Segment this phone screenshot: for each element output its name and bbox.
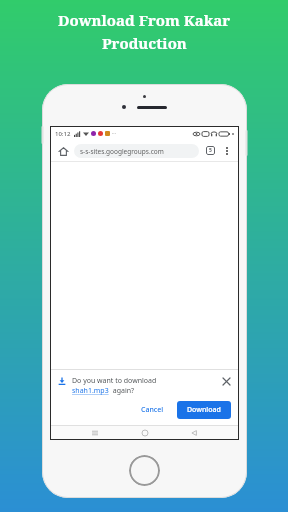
button[interactable]: Cancel (135, 402, 170, 418)
button[interactable]: Download (177, 401, 231, 419)
staticText: Production (102, 33, 187, 53)
staticText: 5 (209, 147, 212, 154)
button[interactable]: More options (220, 144, 233, 157)
staticText: ··· (112, 130, 117, 137)
staticText: s-s-sites.googlegroups.com (80, 147, 164, 156)
staticText: again? (111, 386, 135, 396)
button[interactable]: Close (221, 376, 232, 387)
button[interactable]: Home page (56, 144, 70, 158)
button[interactable]: s-s-sites.googlegroups.com (74, 144, 199, 158)
staticText: Download (187, 405, 221, 415)
staticText: 10:12 (55, 130, 71, 138)
button[interactable]: shah1.mp3 (72, 386, 109, 396)
button[interactable]: Home (129, 455, 160, 486)
button[interactable]: Home (139, 427, 151, 439)
staticText: Do you want to download (72, 376, 157, 386)
button[interactable]: Back (188, 427, 200, 439)
staticText: Cancel (141, 405, 164, 415)
staticText: Download From Kakar (58, 10, 231, 30)
button[interactable]: Switch tabs (204, 144, 217, 157)
button[interactable]: Recents (89, 427, 101, 439)
